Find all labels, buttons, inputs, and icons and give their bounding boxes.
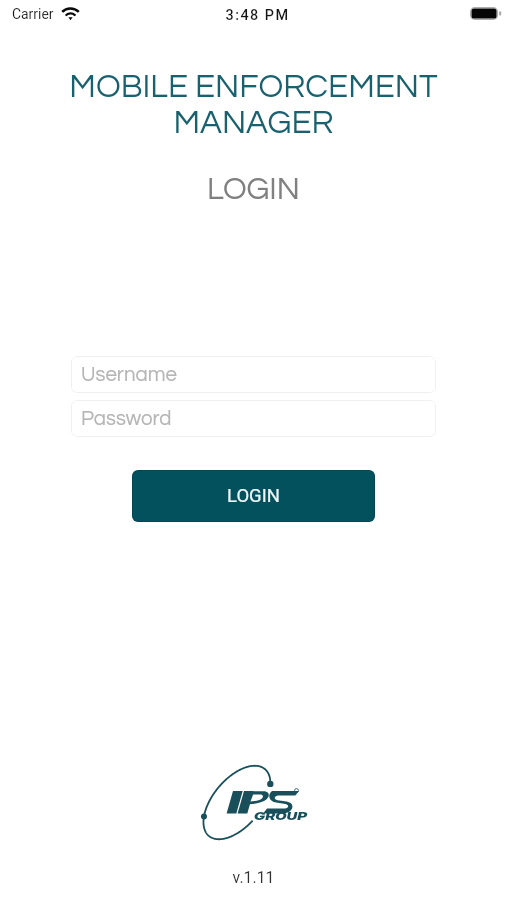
staticText: LOGIN (0, 173, 507, 205)
staticText: LOGIN (227, 485, 280, 507)
staticText: v.1.11 (0, 868, 507, 887)
button[interactable]: Username (71, 356, 436, 393)
staticText: Carrier (12, 6, 54, 22)
staticText: MOBILE ENFORCEMENT MANAGER (0, 70, 507, 140)
staticText: GROUP (254, 810, 308, 822)
button[interactable]: LOGIN (132, 470, 375, 522)
button[interactable]: Password (71, 400, 436, 437)
other: Battery full (470, 7, 501, 20)
staticText: Username (81, 364, 177, 385)
staticText: Password (81, 408, 172, 429)
staticText: 3:48 PM (4, 7, 507, 24)
other: Wi-Fi (62, 8, 79, 20)
